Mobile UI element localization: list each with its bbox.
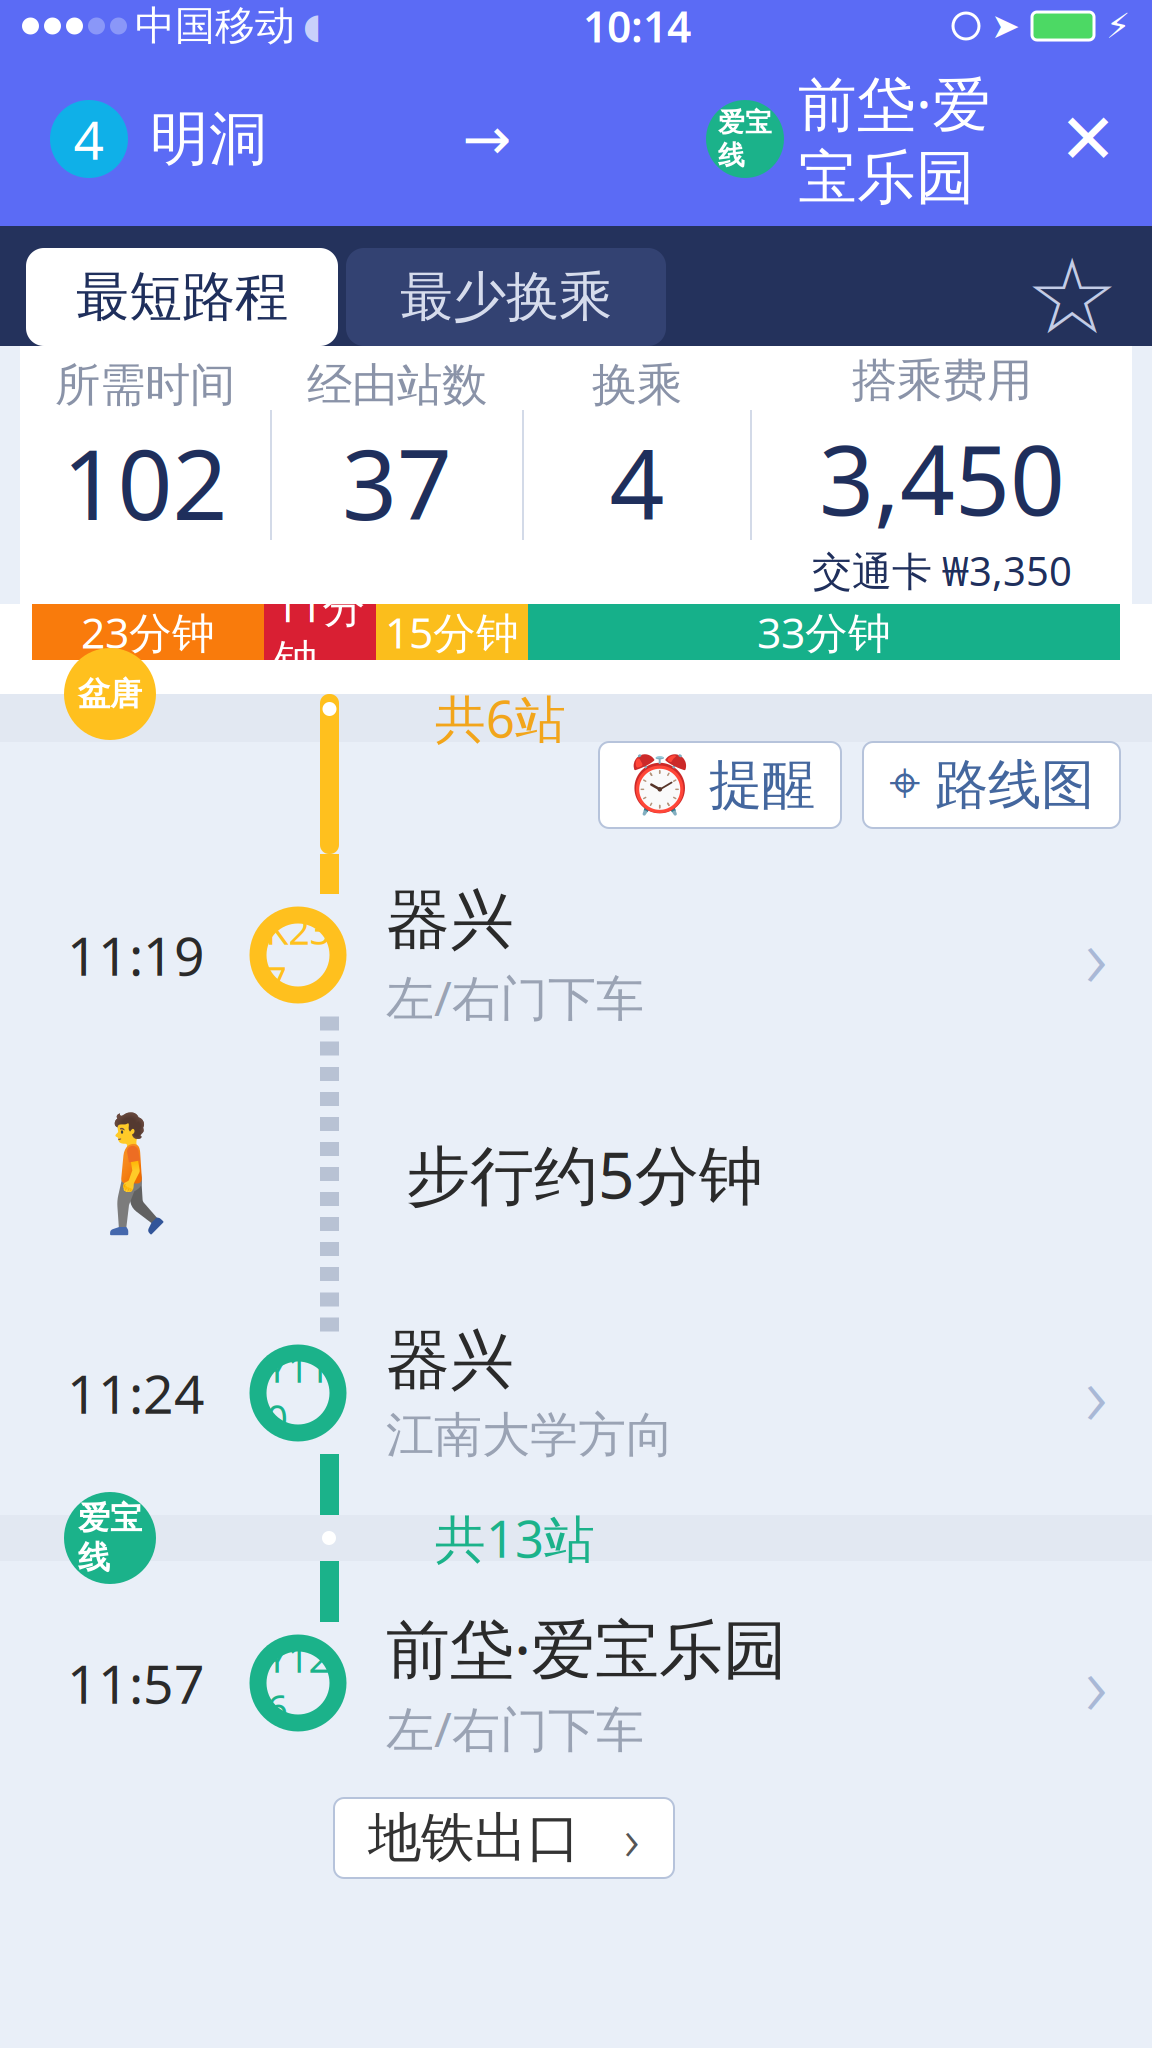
staticText: 经由站数 (307, 357, 487, 413)
staticText: 左/右门下车 (386, 1697, 644, 1760)
staticText: 4 (609, 419, 664, 547)
staticText: › (1085, 1336, 1108, 1450)
staticText: 中国移动 (135, 1, 295, 50)
staticText: 23分钟 (81, 604, 215, 660)
staticText: K237 (265, 905, 330, 1005)
staticText: 换乘 (592, 357, 682, 413)
staticText: 所需时间 (55, 357, 235, 413)
staticText: ☆ (1025, 238, 1118, 356)
staticText: 最短路程 (76, 264, 288, 330)
staticText: › (1085, 898, 1108, 1012)
staticText: 🚶 (66, 1110, 205, 1238)
staticText: 最少换乘 (400, 264, 612, 330)
button[interactable]: Favorite (1012, 248, 1132, 346)
button[interactable]: 最短路程 (26, 248, 338, 346)
staticText: 步行约5分钟 (406, 1131, 763, 1216)
staticText: 地铁出口 (368, 1805, 580, 1871)
staticText: Y110 (266, 1343, 329, 1443)
button[interactable]: ⏰ (599, 742, 841, 828)
staticText: 11:57 (67, 1648, 205, 1718)
staticText: 爱宝线 (78, 1499, 142, 1577)
staticText: 提醒 (709, 752, 815, 818)
staticText: Y126 (266, 1633, 329, 1733)
staticText: 爱宝线 (718, 106, 772, 172)
staticText: › (624, 1799, 640, 1877)
button[interactable]: 最少换乘 (346, 248, 666, 346)
staticText: 共13站 (435, 1504, 595, 1572)
staticText: 3,450 (819, 414, 1065, 542)
staticText: 左/右门下车 (386, 965, 644, 1029)
staticText: 明洞 (150, 103, 268, 175)
staticText: 37 (342, 419, 452, 547)
staticText: 搭乘费用 (852, 353, 1032, 409)
staticText: 盆唐 (78, 674, 142, 714)
button[interactable]: 地铁出口 (334, 1798, 674, 1878)
staticText: 江南大学方向 (386, 1406, 674, 1465)
staticText: ⚡︎ (1106, 6, 1130, 46)
staticText: ✕ (1059, 100, 1117, 178)
staticText: 前垈·爱宝乐园 (798, 64, 991, 214)
staticText: 10:14 (583, 0, 691, 54)
button[interactable]: Close (1038, 89, 1138, 189)
staticText: 器兴 (386, 881, 514, 959)
staticText: ◖ (303, 6, 321, 46)
staticText: 路线图 (935, 752, 1094, 818)
staticText: 15分钟 (385, 604, 519, 660)
staticText: 11分钟 (274, 577, 365, 687)
staticText: ⏰ (625, 753, 695, 817)
staticText: 11:24 (67, 1358, 205, 1428)
staticText: 前垈·爱宝乐园 (386, 1606, 787, 1691)
staticText: 102 (62, 419, 227, 547)
staticText: ➤ (991, 6, 1020, 46)
staticText: 共6站 (435, 684, 566, 752)
staticText: → (462, 106, 511, 172)
staticText: 33分钟 (757, 604, 891, 660)
staticText: › (1085, 1626, 1108, 1740)
staticText: 11:19 (67, 920, 205, 990)
staticText: ⌖ (889, 758, 921, 812)
staticText: 交通卡 ₩3,350 (812, 544, 1072, 597)
button[interactable]: ⌖ (863, 742, 1120, 828)
staticText: 器兴 (386, 1321, 514, 1400)
staticText: 4 (73, 104, 104, 174)
